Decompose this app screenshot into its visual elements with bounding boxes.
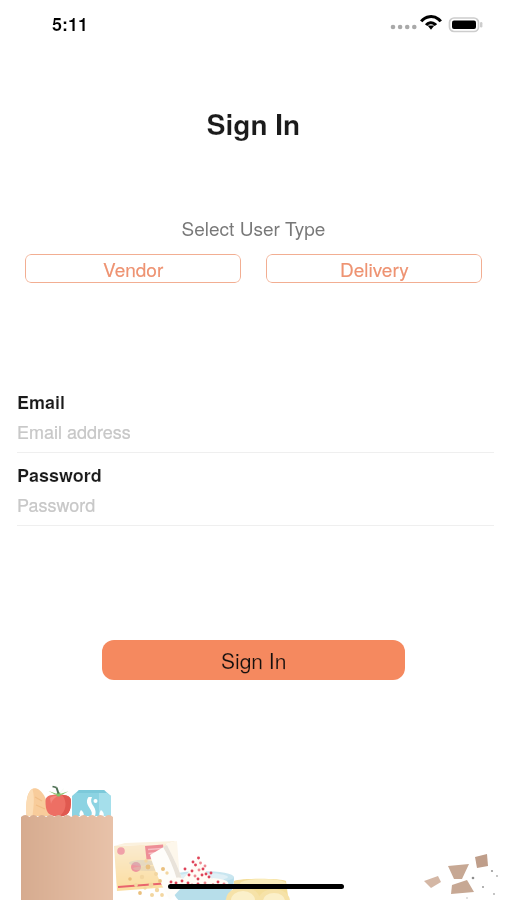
staticText: Sign In: [221, 645, 287, 675]
other: Status icons: [0, 0, 507, 44]
staticText: Select User Type: [0, 214, 507, 241]
staticText: 5:11: [52, 11, 89, 37]
staticText: Email: [17, 389, 66, 415]
staticText: Sign In: [0, 103, 507, 143]
staticText: Password: [17, 462, 102, 488]
button[interactable]: Vendor: [25, 254, 241, 283]
staticText: Email address: [17, 418, 131, 444]
staticText: Password: [17, 491, 96, 517]
button[interactable]: Sign In: [102, 640, 405, 680]
staticText: Delivery: [340, 255, 409, 282]
staticText: Vendor: [103, 255, 164, 282]
button[interactable]: Delivery: [266, 254, 482, 283]
